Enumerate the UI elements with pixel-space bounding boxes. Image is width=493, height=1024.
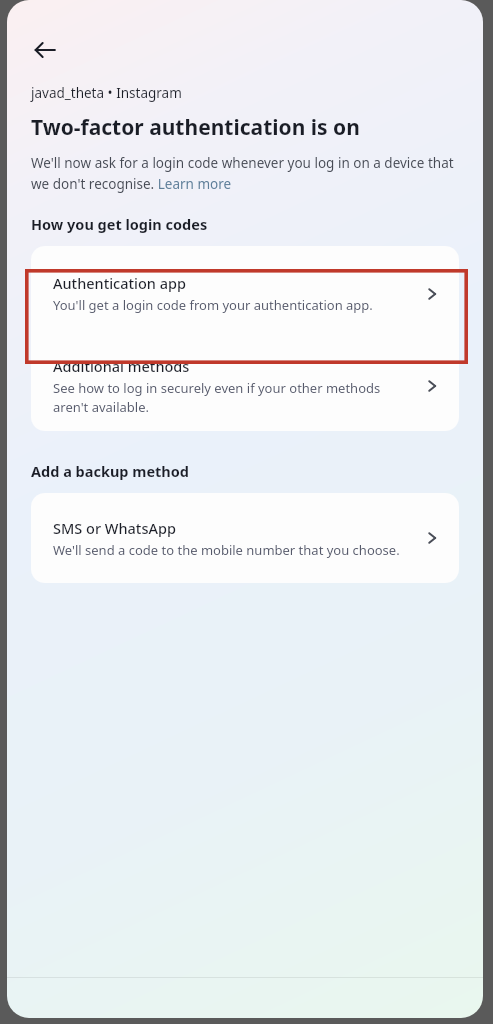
staticText: SMS or WhatsApp (53, 518, 176, 538)
button[interactable]: SMS or WhatsApp (31, 493, 459, 583)
staticText: Authentication app (53, 273, 186, 293)
staticText: How you get login codes (31, 214, 208, 234)
staticText: You'll get a login code from your authen… (53, 296, 373, 314)
staticText: We'll send a code to the mobile number t… (53, 541, 400, 559)
staticText: We'll now ask for a login code whenever … (31, 154, 461, 193)
button[interactable]: Authentication app (31, 246, 459, 341)
staticText: javad_theta • Instagram (31, 84, 182, 102)
button[interactable]: Back (21, 26, 69, 74)
staticText: See how to log in securely even if your … (53, 379, 403, 416)
staticText: Two-factor authentication is on (31, 113, 360, 142)
staticText: Add a backup method (31, 461, 190, 481)
button[interactable]: Additional methods (31, 341, 459, 431)
staticText: Additional methods (53, 356, 190, 376)
